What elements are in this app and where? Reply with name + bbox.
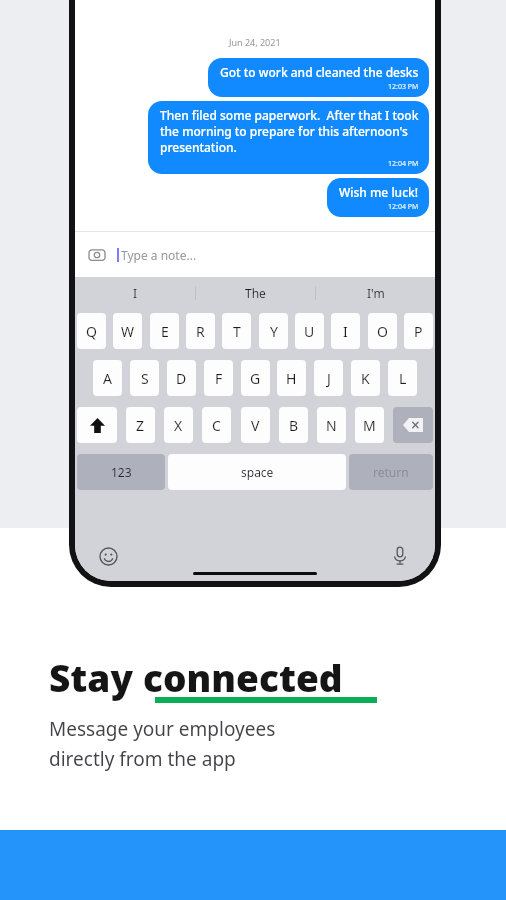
button[interactable]: space	[168, 454, 346, 490]
staticText: The	[245, 285, 266, 301]
button[interactable]: N	[317, 407, 346, 443]
staticText: I'm	[367, 285, 385, 301]
staticText: N	[326, 416, 337, 435]
staticText: 12:04 PM	[388, 202, 419, 212]
button[interactable]: P	[404, 313, 433, 349]
button[interactable]: J	[314, 360, 343, 396]
staticText: Message your employees directly from the…	[49, 716, 276, 771]
button[interactable]: H	[277, 360, 306, 396]
staticText: F	[215, 369, 223, 388]
staticText: B	[289, 416, 299, 435]
button[interactable]: T	[222, 313, 251, 349]
staticText: S	[141, 369, 149, 388]
staticText: U	[304, 322, 315, 341]
staticText: Got to work and cleaned the desks	[220, 64, 419, 80]
staticText: C	[212, 416, 221, 435]
staticText: M	[363, 416, 376, 435]
button[interactable]: V	[241, 407, 270, 443]
staticText: 12:03 PM	[388, 82, 419, 92]
staticText: Then filed some paperwork. After that I …	[160, 107, 419, 155]
button[interactable]: E	[150, 313, 179, 349]
staticText: T	[233, 322, 241, 341]
button[interactable]: U	[295, 313, 324, 349]
staticText: P	[414, 322, 423, 341]
button[interactable]: L	[388, 360, 417, 396]
staticText: G	[250, 369, 261, 388]
staticText: V	[251, 416, 260, 435]
staticText: Y	[270, 322, 278, 341]
staticText: R	[196, 322, 205, 341]
staticText: connected	[143, 652, 343, 702]
staticText: E	[161, 322, 169, 341]
staticText: Q	[86, 322, 97, 341]
staticText: I	[343, 322, 348, 341]
staticText: A	[103, 369, 112, 388]
button[interactable]: 123	[77, 454, 165, 490]
button[interactable]: I	[331, 313, 360, 349]
button[interactable]: Voice input	[389, 545, 411, 567]
staticText: Wish me luck!	[339, 184, 419, 200]
button[interactable]: Then filed some paperwork. After that I …	[148, 101, 429, 174]
button[interactable]: Wish me luck!	[327, 178, 429, 217]
button[interactable]: G	[241, 360, 270, 396]
staticText: I	[133, 285, 138, 301]
button[interactable]: Y	[259, 313, 288, 349]
staticText: W	[121, 322, 135, 341]
button[interactable]: The	[196, 277, 315, 309]
button[interactable]: Shift	[77, 407, 117, 443]
button[interactable]: W	[113, 313, 142, 349]
staticText: H	[286, 369, 297, 388]
button[interactable]: D	[167, 360, 196, 396]
button[interactable]: I'm	[316, 277, 435, 309]
button[interactable]: Got to work and cleaned the desks	[208, 58, 429, 97]
button[interactable]: M	[355, 407, 384, 443]
button[interactable]: Backspace	[393, 407, 433, 443]
button[interactable]: I	[75, 277, 195, 309]
staticText: J	[327, 369, 331, 388]
staticText: Jun 24, 2021	[229, 36, 281, 48]
staticText: Stay	[49, 652, 143, 702]
button[interactable]: return	[349, 454, 433, 490]
button[interactable]: X	[164, 407, 193, 443]
button[interactable]: R	[186, 313, 215, 349]
staticText: D	[176, 369, 187, 388]
button[interactable]: Attach photo	[87, 245, 107, 265]
staticText: 12:04 PM	[388, 159, 419, 169]
button[interactable]: S	[130, 360, 159, 396]
staticText: L	[399, 369, 407, 388]
button[interactable]: F	[204, 360, 233, 396]
staticText: K	[361, 369, 370, 388]
button[interactable]: B	[279, 407, 308, 443]
button[interactable]: Emoji	[97, 545, 119, 567]
staticText: Type a note...	[121, 247, 197, 263]
button[interactable]: Q	[77, 313, 106, 349]
button[interactable]: Z	[126, 407, 155, 443]
staticText: X	[174, 416, 183, 435]
staticText: O	[377, 322, 388, 341]
staticText: space	[241, 464, 274, 480]
staticText: return	[373, 464, 409, 480]
button[interactable]: A	[93, 360, 122, 396]
staticText: Z	[136, 416, 145, 435]
button[interactable]: O	[368, 313, 397, 349]
staticText: 123	[111, 464, 132, 480]
button[interactable]: K	[351, 360, 380, 396]
button[interactable]: C	[202, 407, 231, 443]
